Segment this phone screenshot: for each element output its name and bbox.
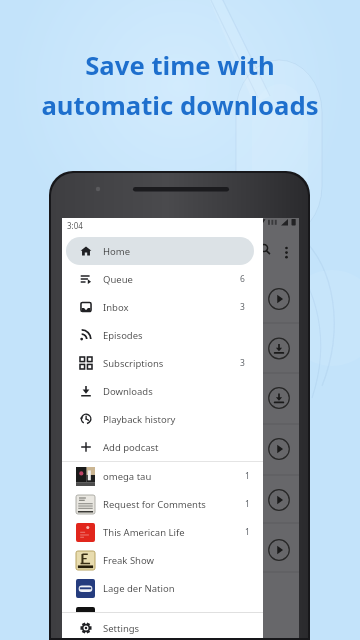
button[interactable]: 3:04 — [62, 218, 263, 638]
staticText: Episodes — [103, 329, 143, 342]
staticText: 3:04 — [67, 220, 83, 231]
button[interactable]: Add podcast — [66, 433, 254, 461]
staticText: 3 — [240, 357, 245, 369]
button[interactable]: omega tau — [62, 462, 263, 490]
staticText: 6 — [240, 273, 245, 285]
button[interactable]: This American Life — [62, 518, 263, 546]
button[interactable]: Home — [66, 237, 254, 265]
staticText: Queue — [103, 273, 133, 286]
staticText: Inbox — [103, 301, 129, 314]
button[interactable]: Subscriptions — [66, 349, 254, 377]
staticText: Home — [103, 245, 131, 258]
button[interactable]: Lage der Nation — [62, 574, 263, 602]
staticText: Save time with — [85, 48, 275, 83]
staticText: Lage der Nation — [103, 582, 175, 595]
button[interactable]: Inbox — [66, 293, 254, 321]
staticText: 1 — [245, 470, 250, 482]
button[interactable]: Request for Comments — [62, 490, 263, 518]
staticText: Subscriptions — [103, 357, 164, 370]
staticText: 1 — [245, 526, 250, 538]
button[interactable]: Downloads — [66, 377, 254, 405]
button[interactable]: Queue — [66, 265, 254, 293]
staticText: This American Life — [103, 526, 185, 539]
staticText: Downloads — [103, 385, 153, 398]
staticText: Freak Show — [103, 554, 155, 567]
staticText: Playback history — [103, 413, 176, 426]
staticText: Request for Comments — [103, 498, 206, 511]
staticText: 3 — [240, 301, 245, 313]
staticText: automatic downloads — [41, 88, 319, 123]
staticText: 1 — [245, 498, 250, 510]
button[interactable]: Episodes — [66, 321, 254, 349]
staticText: Settings — [103, 622, 140, 635]
staticText: Add podcast — [103, 441, 159, 454]
button[interactable]: Settings — [66, 614, 254, 638]
staticText: omega tau — [103, 470, 152, 483]
button[interactable]: Playback history — [66, 405, 254, 433]
button[interactable]: Freak Show — [62, 546, 263, 574]
